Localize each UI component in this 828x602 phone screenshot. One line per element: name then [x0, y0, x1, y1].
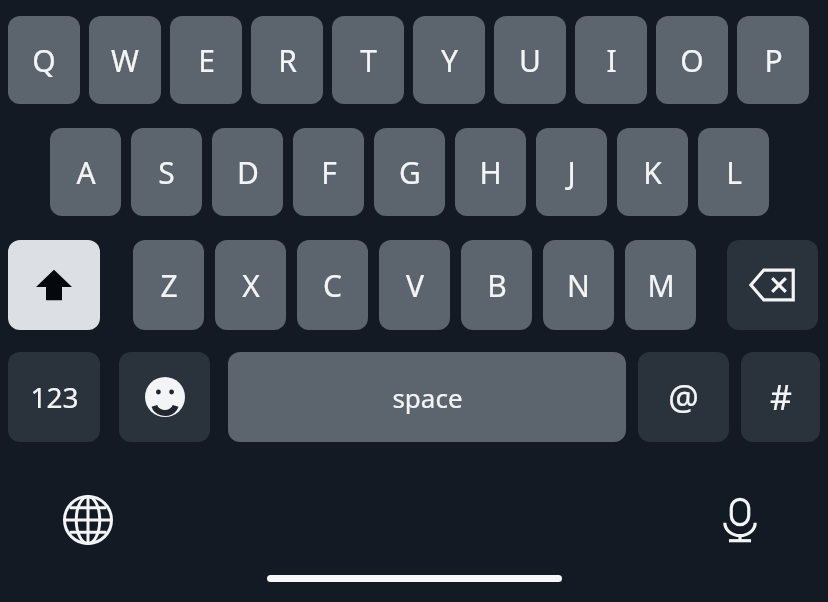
button[interactable]: R — [251, 16, 323, 104]
staticText: E — [198, 40, 215, 81]
staticText: L — [726, 152, 742, 193]
button[interactable]: F — [293, 128, 364, 216]
staticText: @ — [668, 374, 699, 420]
button[interactable]: space — [228, 352, 626, 442]
staticText: R — [278, 40, 297, 81]
button[interactable]: B — [461, 240, 532, 330]
button[interactable]: V — [379, 240, 450, 330]
staticText: M — [647, 265, 675, 306]
staticText: V — [406, 265, 424, 306]
button[interactable]: M — [625, 240, 696, 330]
button[interactable]: U — [494, 16, 566, 104]
staticText: W — [111, 40, 139, 81]
button[interactable]: J — [536, 128, 607, 216]
staticText: # — [770, 374, 792, 420]
button[interactable]: S — [131, 128, 202, 216]
button[interactable]: G — [374, 128, 445, 216]
button[interactable]: K — [617, 128, 688, 216]
staticText: J — [567, 152, 576, 193]
staticText: D — [237, 152, 259, 193]
button[interactable]: Change keyboard language — [52, 484, 124, 556]
button[interactable]: Z — [133, 240, 204, 330]
staticText: U — [519, 40, 541, 81]
button[interactable]: D — [212, 128, 283, 216]
staticText: C — [323, 265, 342, 306]
staticText: space — [392, 380, 463, 415]
button[interactable]: N — [543, 240, 614, 330]
button[interactable]: O — [656, 16, 728, 104]
button[interactable]: @ — [638, 352, 729, 442]
staticText: Y — [441, 40, 458, 81]
button[interactable]: W — [89, 16, 161, 104]
staticText: Q — [32, 40, 56, 81]
button[interactable]: 123 — [8, 352, 100, 442]
staticText: 123 — [30, 378, 79, 416]
button[interactable]: H — [455, 128, 526, 216]
staticText: N — [567, 265, 590, 306]
staticText: P — [764, 40, 783, 81]
staticText: H — [479, 152, 502, 193]
staticText: B — [487, 265, 507, 306]
button[interactable]: # — [741, 352, 820, 442]
button[interactable]: A — [50, 128, 121, 216]
staticText: K — [643, 152, 662, 193]
button[interactable]: Q — [8, 16, 80, 104]
button[interactable]: Backspace — [727, 240, 818, 330]
staticText: X — [242, 265, 260, 306]
staticText: I — [606, 40, 617, 81]
staticText: O — [680, 40, 704, 81]
button[interactable]: E — [170, 16, 242, 104]
staticText: A — [76, 152, 96, 193]
button[interactable]: P — [737, 16, 809, 104]
staticText: F — [321, 152, 337, 193]
staticText: Z — [160, 265, 178, 306]
button[interactable]: Y — [413, 16, 485, 104]
button[interactable]: Voice input — [704, 484, 776, 556]
button[interactable]: T — [332, 16, 404, 104]
button[interactable]: X — [215, 240, 286, 330]
staticText: T — [360, 40, 377, 81]
staticText: S — [158, 152, 175, 193]
button[interactable]: Shift — [8, 240, 100, 330]
staticText: G — [399, 152, 421, 193]
button[interactable]: L — [698, 128, 769, 216]
button[interactable]: Emoji — [119, 352, 210, 442]
button[interactable]: I — [575, 16, 647, 104]
button[interactable]: C — [297, 240, 368, 330]
